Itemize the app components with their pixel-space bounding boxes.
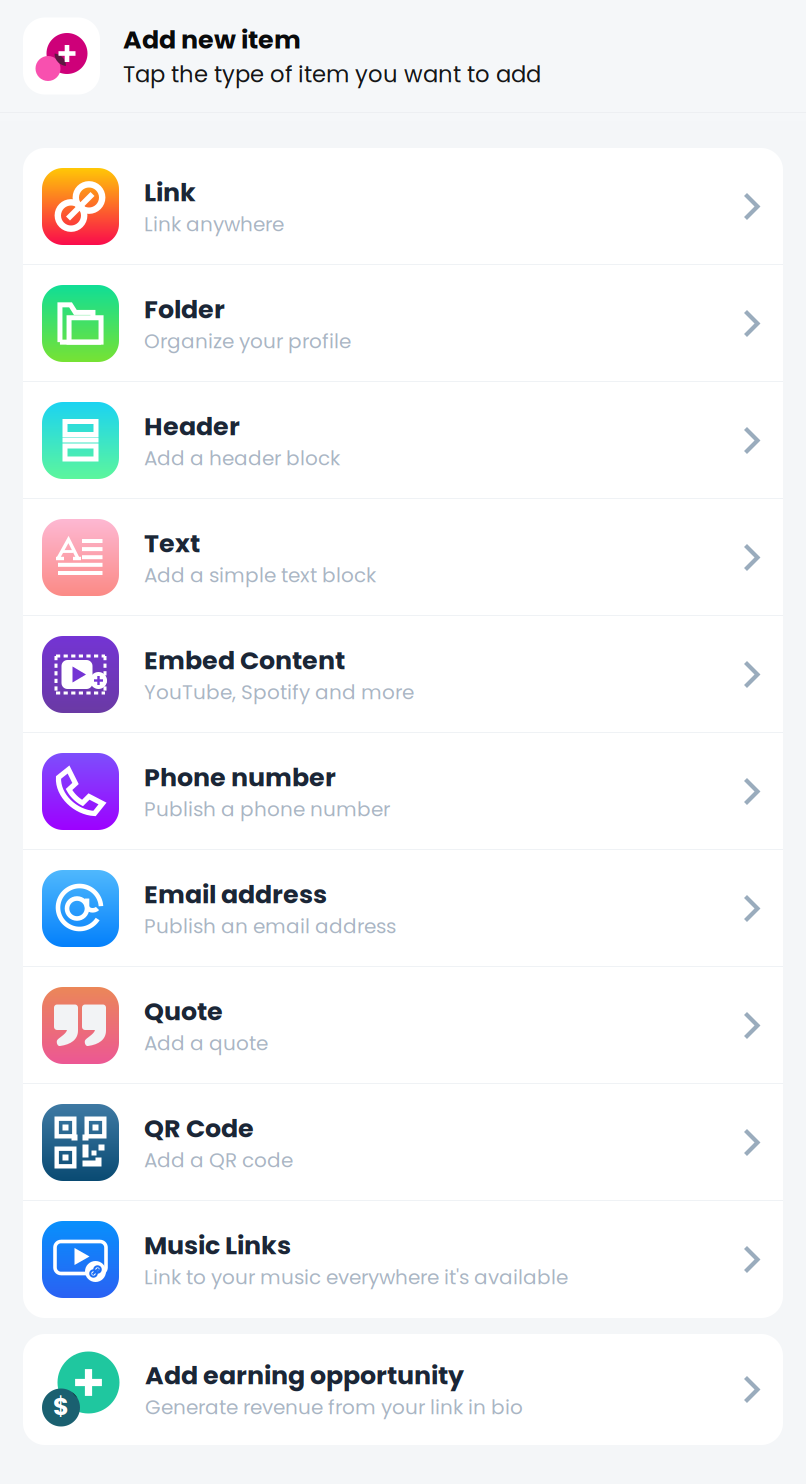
staticText: Generate revenue from your link in bio — [145, 1393, 523, 1421]
staticText: Quote — [144, 994, 223, 1029]
button[interactable]: Email address — [23, 850, 783, 967]
button[interactable]: Quote — [23, 967, 783, 1084]
staticText: YouTube, Spotify and more — [144, 678, 414, 706]
staticText: Add a header block — [144, 444, 340, 472]
button[interactable]: Phone number — [23, 733, 783, 850]
staticText: Music Links — [144, 1228, 291, 1263]
staticText: Add a QR code — [144, 1146, 293, 1174]
button[interactable]: Header — [23, 382, 783, 499]
staticText: QR Code — [144, 1111, 254, 1146]
staticText: Add earning opportunity — [145, 1358, 464, 1393]
staticText: Tap the type of item you want to add — [123, 58, 541, 90]
staticText: Publish a phone number — [144, 795, 390, 823]
staticText: Link anywhere — [144, 210, 284, 238]
staticText: Text — [144, 526, 200, 561]
staticText: Email address — [144, 877, 327, 912]
button[interactable]: QR Code — [23, 1084, 783, 1201]
button[interactable]: Embed Content — [23, 616, 783, 733]
staticText: $ — [53, 1390, 69, 1423]
button[interactable]: Folder — [23, 265, 783, 382]
button[interactable]: Link — [23, 148, 783, 265]
staticText: Publish an email address — [144, 912, 396, 940]
staticText: Header — [144, 409, 240, 444]
button[interactable]: $ — [23, 1334, 783, 1445]
button[interactable]: Music Links — [23, 1201, 783, 1318]
staticText: Add a quote — [144, 1029, 268, 1057]
button[interactable]: Text — [23, 499, 783, 616]
staticText: Embed Content — [144, 643, 345, 678]
staticText: Phone number — [144, 760, 336, 795]
staticText: Folder — [144, 292, 225, 327]
staticText: Link to your music everywhere it's avail… — [144, 1263, 568, 1291]
staticText: Add a simple text block — [144, 561, 376, 589]
staticText: Add new item — [123, 22, 301, 57]
staticText: Organize your profile — [144, 327, 351, 355]
staticText: Link — [144, 175, 196, 210]
